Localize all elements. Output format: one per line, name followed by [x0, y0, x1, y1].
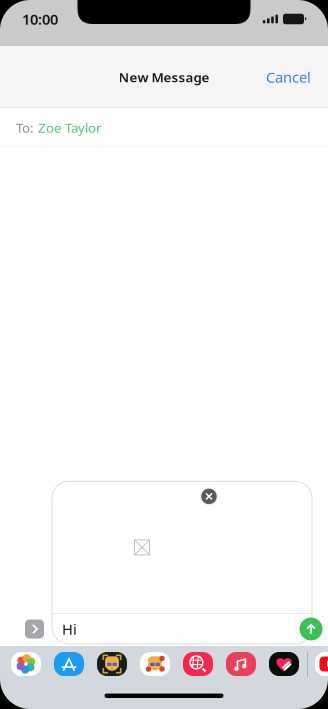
button[interactable]: App Store: [54, 652, 84, 676]
button[interactable]: YouTube: [315, 652, 328, 676]
staticText: To:: [16, 119, 34, 136]
button[interactable]: Memoji stickers: [140, 652, 170, 676]
button[interactable]: Photos: [11, 652, 41, 676]
button[interactable]: Cancel: [255, 58, 322, 96]
button[interactable]: Images: [183, 652, 213, 676]
staticText: Cancel: [266, 67, 311, 87]
button[interactable]: Send: [295, 613, 327, 645]
button[interactable]: Digital Touch: [269, 652, 299, 676]
staticText: New Message: [118, 68, 209, 86]
staticText: 10:00: [22, 9, 58, 29]
button[interactable]: Music: [226, 652, 256, 676]
button[interactable]: More apps: [17, 614, 52, 644]
button[interactable]: Remove attachment: [196, 483, 222, 509]
staticText: Hi: [62, 619, 77, 639]
image: [134, 539, 150, 555]
staticText: Zoe Taylor: [38, 119, 102, 136]
button[interactable]: Memoji: [97, 652, 127, 676]
